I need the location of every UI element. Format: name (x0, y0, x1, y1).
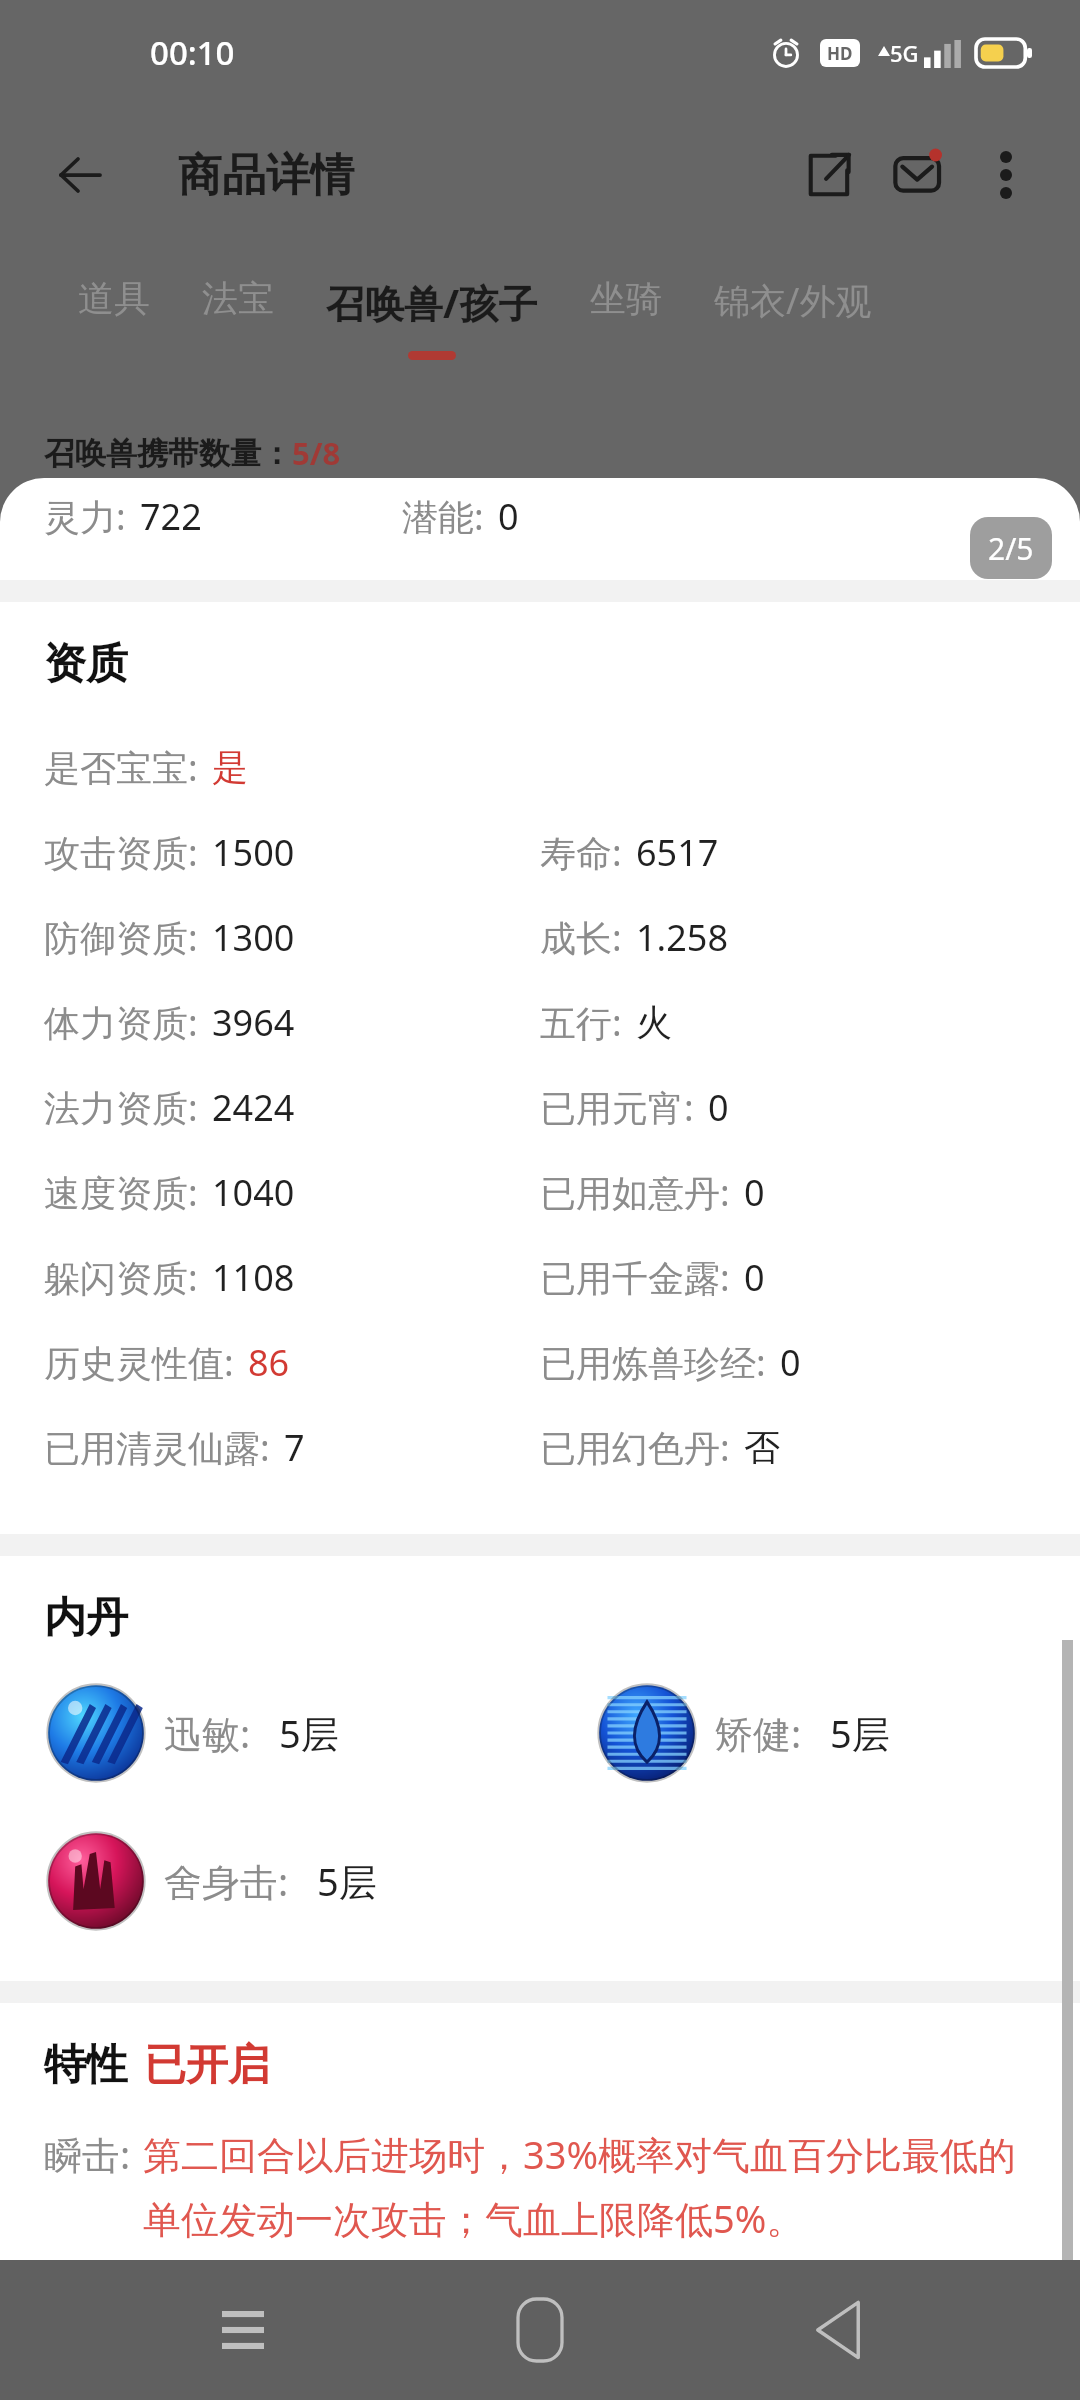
staticText: 5G (890, 38, 919, 68)
button[interactable]: 舍身击: (44, 1829, 377, 1933)
staticText: 0 (708, 1083, 729, 1132)
staticText: 成长: (540, 913, 622, 962)
staticText: 舍身击: (164, 1855, 289, 1907)
button[interactable]: Messages (874, 129, 966, 221)
staticText: 速度资质: (44, 1168, 198, 1217)
button[interactable]: 锦衣/外观 (688, 270, 898, 353)
staticText: 否 (744, 1425, 780, 1470)
staticText: 召唤兽/孩子 (326, 276, 538, 329)
staticText: 3964 (212, 998, 295, 1047)
button[interactable]: Share (782, 129, 874, 221)
staticText: 瞬击: (44, 2128, 131, 2180)
staticText: HD (827, 42, 853, 65)
staticText: 法宝 (202, 276, 274, 321)
button[interactable]: 坐骑 (564, 270, 688, 349)
button[interactable]: 法宝 (176, 270, 300, 349)
staticText: 灵力: (44, 492, 126, 541)
staticText: 5层 (317, 1855, 377, 1907)
button[interactable]: More options (966, 135, 1046, 215)
staticText: 0 (744, 1253, 765, 1302)
staticText: 迅敏: (164, 1707, 251, 1759)
staticText: 5/8 (292, 432, 341, 474)
staticText: 0 (744, 1168, 765, 1217)
staticText: 商品详情 (178, 148, 354, 203)
staticText: 躲闪资质: (44, 1253, 198, 1302)
button[interactable]: Recents (188, 2275, 298, 2385)
staticText: 已用炼兽珍经: (540, 1338, 766, 1387)
staticText: 攻击资质: (44, 828, 198, 877)
staticText: 0 (498, 492, 519, 541)
button[interactable]: 迅敏: (44, 1681, 339, 1785)
button[interactable]: Back (36, 131, 124, 219)
staticText: 防御资质: (44, 913, 198, 962)
button[interactable]: 召唤兽/孩子 (300, 270, 564, 366)
button[interactable]: Home (485, 2275, 595, 2385)
staticText: 火 (636, 1000, 672, 1045)
staticText: 资质 (44, 638, 128, 691)
staticText: 第二回合以后进场时，33%概率对气血百分比最低的单位发动一次攻击；气血上限降低5… (143, 2128, 1044, 2244)
staticText: 是否宝宝: (44, 743, 198, 792)
staticText: 00:10 (150, 30, 235, 75)
staticText: 是 (212, 745, 248, 790)
staticText: 1108 (212, 1253, 295, 1302)
staticText: 5层 (279, 1707, 339, 1759)
staticText: 1300 (212, 913, 295, 962)
staticText: 已用千金露: (540, 1253, 730, 1302)
staticText: 法力资质: (44, 1083, 198, 1132)
staticText: 5层 (830, 1707, 890, 1759)
staticText: 锦衣/外观 (714, 276, 872, 325)
staticText: 已开启 (144, 2039, 270, 2092)
button[interactable]: 矫健: (595, 1681, 890, 1785)
staticText: 内丹 (44, 1592, 128, 1645)
staticText: 道具 (78, 276, 150, 321)
staticText: 寿命: (540, 828, 622, 877)
staticText: 1.258 (636, 913, 729, 962)
staticText: 86 (248, 1338, 290, 1387)
staticText: 历史灵性值: (44, 1338, 234, 1387)
staticText: 已用清灵仙露: (44, 1423, 270, 1472)
staticText: 召唤兽携带数量： (44, 434, 292, 473)
staticText: 722 (140, 492, 202, 541)
staticText: 已用元宵: (540, 1083, 694, 1132)
staticText: 2/5 (988, 528, 1034, 569)
staticText: 潜能: (402, 492, 484, 541)
staticText: 2424 (212, 1083, 295, 1132)
staticText: 0 (780, 1338, 801, 1387)
staticText: 7 (284, 1423, 305, 1472)
staticText: 坐骑 (590, 276, 662, 321)
button[interactable]: 道具 (52, 270, 176, 349)
staticText: 1040 (212, 1168, 295, 1217)
staticText: 特性 (44, 2039, 128, 2092)
staticText: 矫健: (715, 1707, 802, 1759)
staticText: 体力资质: (44, 998, 198, 1047)
staticText: 6517 (636, 828, 719, 877)
button[interactable]: Back (783, 2275, 893, 2385)
staticText: 已用幻色丹: (540, 1423, 730, 1472)
staticText: 1500 (212, 828, 295, 877)
staticText: 已用如意丹: (540, 1168, 730, 1217)
staticText: 五行: (540, 998, 622, 1047)
